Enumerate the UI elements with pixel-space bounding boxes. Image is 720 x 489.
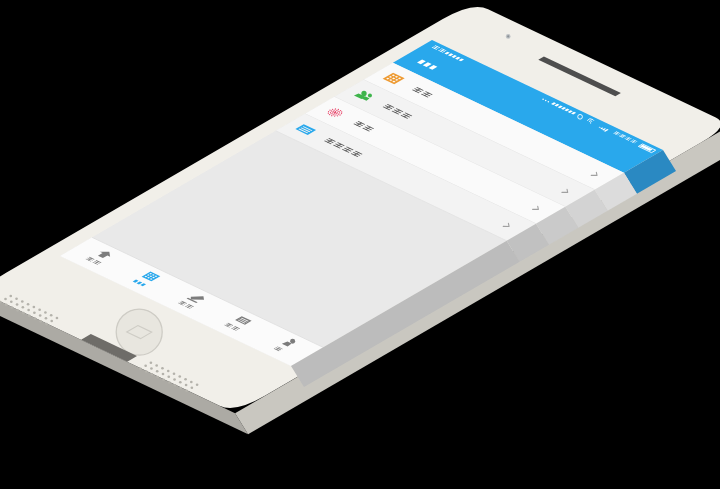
button[interactable]: 公海 bbox=[305, 97, 565, 224]
button[interactable]: 工作 bbox=[152, 281, 230, 322]
button[interactable]: CRM bbox=[106, 259, 184, 300]
button[interactable]: 名片扫描 bbox=[276, 114, 536, 241]
button[interactable]: 我 bbox=[245, 325, 323, 366]
button[interactable]: 消息 bbox=[199, 303, 277, 344]
button[interactable]: 首页 bbox=[60, 237, 138, 278]
button[interactable]: 客户 bbox=[364, 63, 624, 190]
button[interactable]: 联系人 bbox=[334, 80, 594, 207]
